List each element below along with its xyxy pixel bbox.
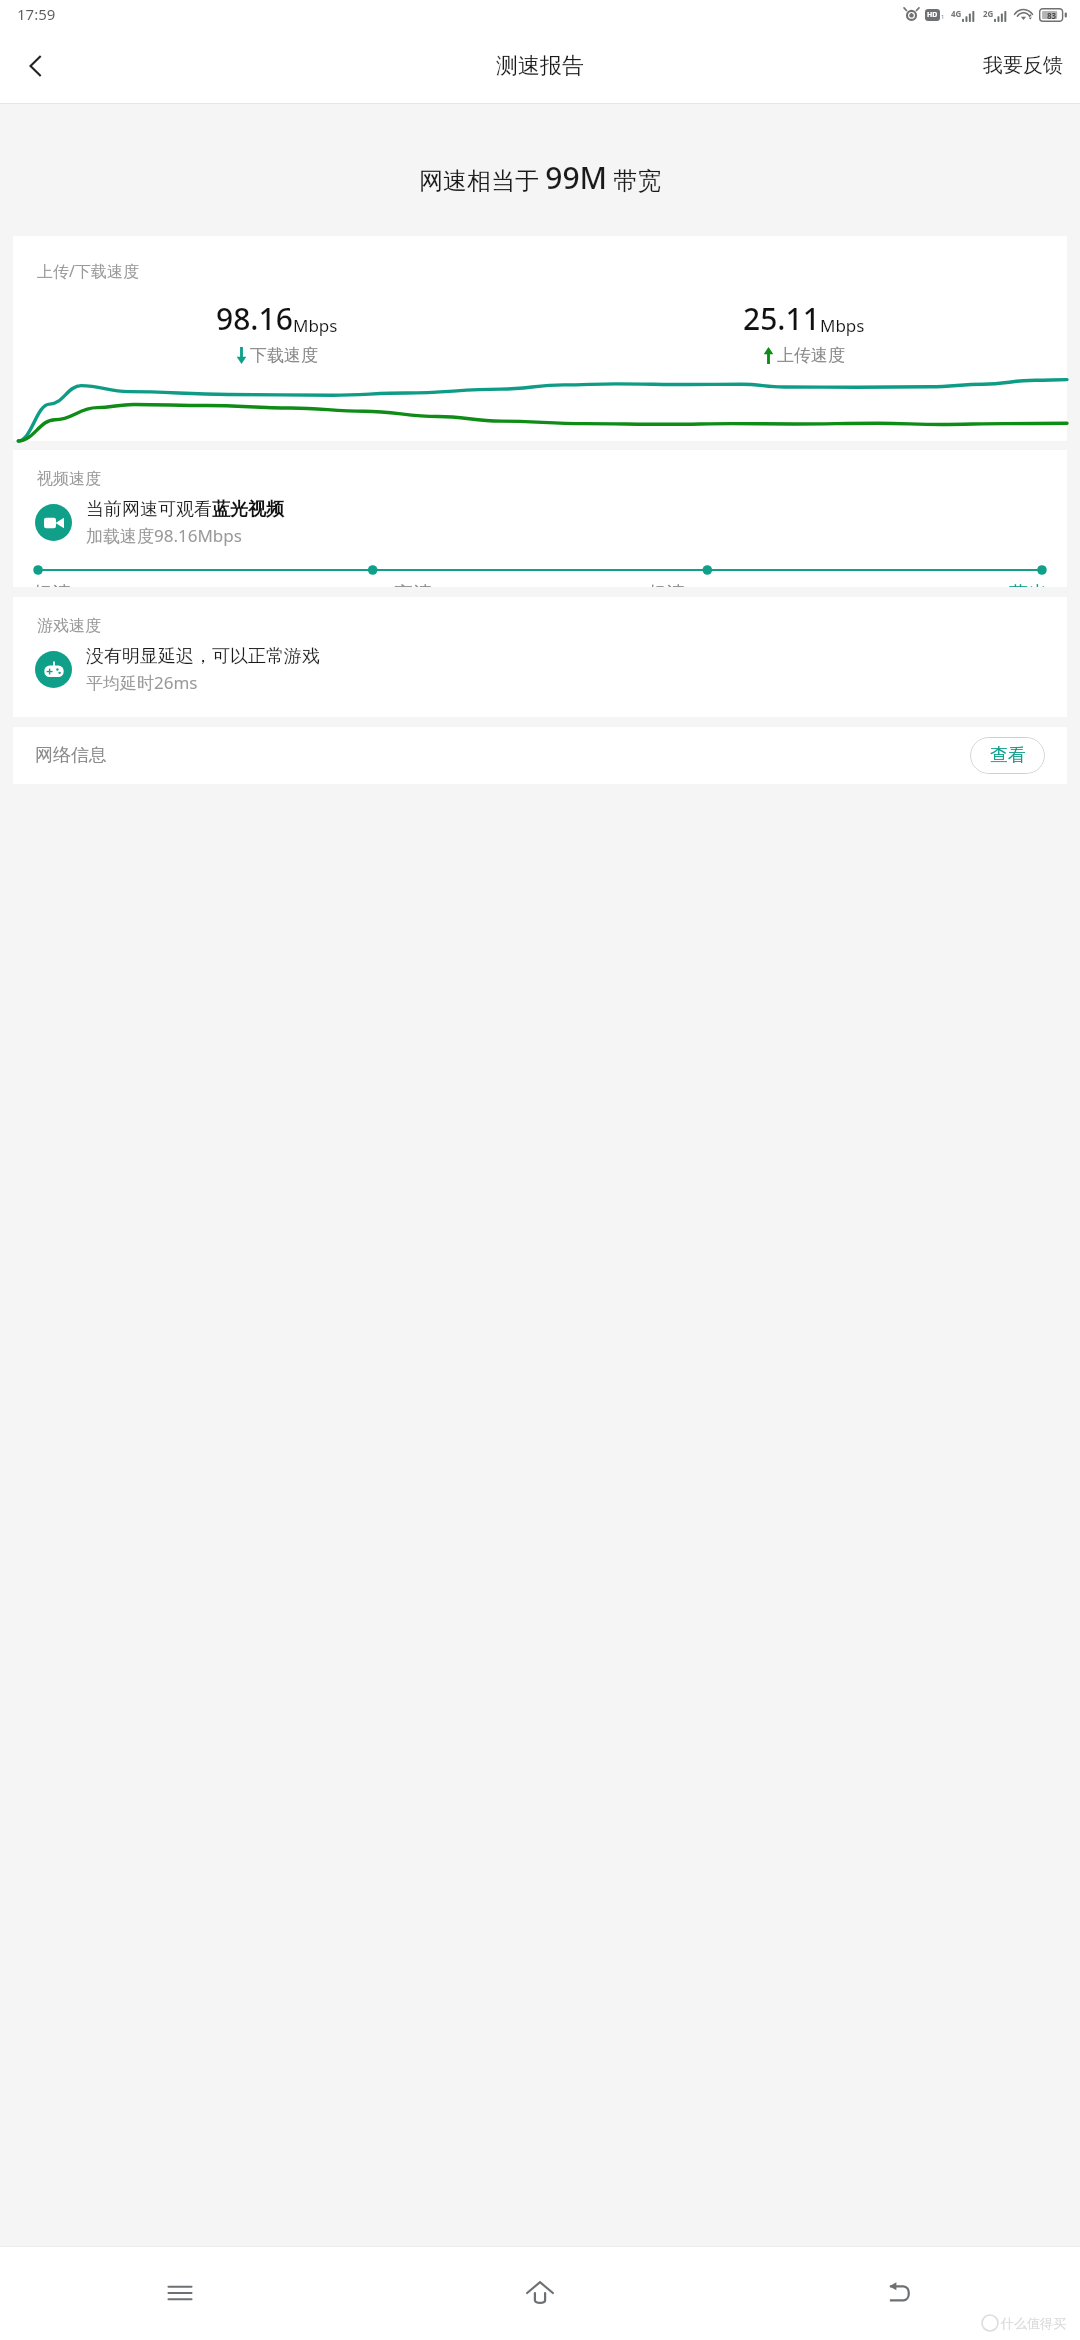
staticText: 标清 xyxy=(33,582,71,587)
staticText: Mbps xyxy=(293,314,338,337)
staticText: 上传/下载速度 xyxy=(37,260,139,282)
staticText: 网络信息 xyxy=(35,744,107,767)
staticText: HD xyxy=(927,10,938,20)
staticText: 游戏速度 xyxy=(37,616,101,636)
staticText: 没有明显延迟，可以正常游戏 xyxy=(86,645,320,668)
staticText: 1 xyxy=(941,13,945,21)
staticText: 当前网速可观看蓝光视频 xyxy=(86,498,284,521)
staticText: 视频速度 xyxy=(37,469,101,489)
staticText: 加载速度98.16Mbps xyxy=(86,524,242,547)
button[interactable]: 返回 xyxy=(0,30,72,102)
button[interactable]: 我要反馈 xyxy=(966,28,1080,103)
staticText: 超清 xyxy=(647,582,685,587)
button[interactable]: 最近任务 xyxy=(0,2246,360,2340)
button[interactable]: 返回 xyxy=(720,2246,1080,2340)
staticText: 测速报告 xyxy=(496,52,584,80)
staticText: 什么值得买 xyxy=(1001,2315,1066,2331)
staticText: 网速相当于 99M 带宽 xyxy=(419,157,662,198)
staticText: 98.16 xyxy=(216,298,293,339)
staticText: 下载速度 xyxy=(250,345,318,366)
staticText: 我要反馈 xyxy=(983,53,1063,78)
staticText: Mbps xyxy=(820,314,865,337)
button[interactable]: 查看 xyxy=(970,737,1045,774)
staticText: 上传速度 xyxy=(777,345,845,366)
staticText: 4G xyxy=(951,8,962,19)
staticText: 高清 xyxy=(394,582,432,587)
staticText: 25.11 xyxy=(743,298,820,339)
staticText: 蓝光 xyxy=(1009,582,1047,587)
button[interactable]: 主页 xyxy=(360,2246,720,2340)
staticText: 83 xyxy=(1047,10,1057,21)
staticText: 17:59 xyxy=(17,4,56,24)
staticText: 查看 xyxy=(990,744,1026,767)
staticText: 平均延时26ms xyxy=(86,671,198,694)
staticText: 2G xyxy=(983,8,994,19)
